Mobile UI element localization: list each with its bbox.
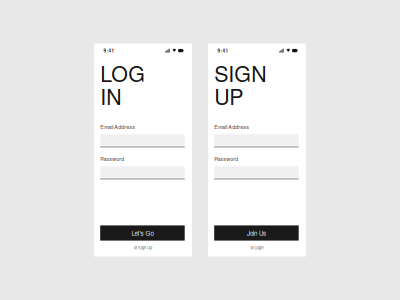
staticText: Password: [214, 155, 238, 163]
button[interactable]: or Login: [208, 246, 306, 250]
staticText: or Login: [250, 245, 263, 250]
staticText: Let's Go: [131, 229, 153, 237]
button[interactable]: Email Address: [100, 124, 185, 147]
staticText: Email Address: [214, 123, 249, 131]
staticText: Email Address: [100, 123, 135, 131]
staticText: IN: [100, 80, 121, 111]
button[interactable]: Password: [214, 156, 299, 179]
staticText: UP: [214, 80, 243, 111]
staticText: Password: [100, 155, 124, 163]
button[interactable]: Password: [100, 156, 185, 179]
button[interactable]: Let's Go: [100, 225, 185, 241]
button[interactable]: Email Address: [214, 124, 299, 147]
staticText: or Sign Up: [134, 245, 152, 250]
button[interactable]: or Sign Up: [94, 246, 192, 250]
staticText: LOG: [100, 57, 145, 88]
staticText: Join Us: [247, 229, 266, 237]
staticText: 9:41: [103, 47, 114, 54]
staticText: SIGN: [214, 57, 266, 88]
button[interactable]: Join Us: [214, 225, 299, 241]
staticText: 9:41: [217, 47, 228, 54]
